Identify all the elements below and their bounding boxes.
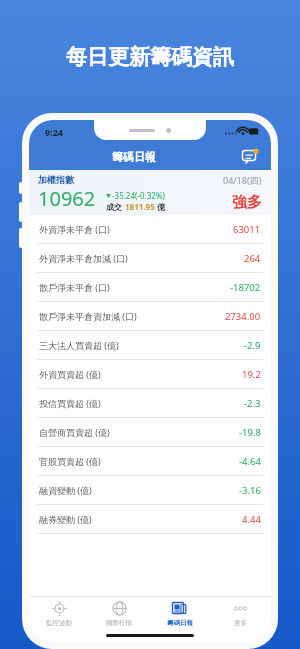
button[interactable]: 官股買賣超 (億) — [29, 447, 271, 476]
staticText: 外資淨未平倉加減 (口) — [39, 252, 128, 264]
button[interactable]: 外資買賣超 (億) — [29, 360, 271, 389]
button[interactable]: 三大法人買賣超 (億) — [29, 331, 271, 360]
button[interactable]: 融資變動 (億) — [29, 476, 271, 505]
staticText: -19.8 — [239, 426, 261, 439]
staticText: 自營商買賣超 (億) — [39, 426, 110, 438]
staticText: 9:24 — [45, 126, 63, 138]
staticText: 更多 — [234, 619, 247, 627]
staticText: -2.9 — [244, 339, 261, 352]
staticText: 散戶淨未平倉資加減 (口) — [39, 310, 137, 322]
staticText: 國際行情 — [106, 619, 132, 627]
button[interactable]: 散戶淨未平倉 (口) — [29, 273, 271, 302]
staticText: 億 — [155, 201, 166, 212]
button[interactable]: Messages — [239, 146, 261, 168]
button[interactable]: 監控波動 — [29, 601, 89, 627]
button[interactable]: 籌碼日報 — [149, 601, 210, 627]
staticText: 投信買賣超 (億) — [39, 397, 101, 409]
staticText: 1811.95 — [125, 201, 155, 212]
button[interactable]: 散戶淨未平倉資加減 (口) — [29, 302, 271, 331]
staticText: 每日更新籌碼資訊 — [66, 44, 234, 70]
staticText: 籌碼日報 — [112, 150, 156, 164]
button[interactable]: 融券變動 (億) — [29, 505, 271, 534]
staticText: 監控波動 — [46, 619, 72, 627]
staticText: -3.16 — [239, 484, 261, 497]
staticText: 10962 — [38, 185, 96, 212]
staticText: 外資買賣超 (億) — [39, 368, 101, 380]
staticText: -2.3 — [244, 397, 261, 410]
staticText: 成交 — [106, 201, 125, 212]
staticText: 強多 — [232, 193, 262, 212]
staticText: 264 — [244, 252, 261, 265]
staticText: -35.24(-0.32%) — [112, 190, 165, 201]
staticText: 04/18(四) — [223, 174, 262, 186]
staticText: 三大法人買賣超 (億) — [39, 339, 119, 351]
staticText: 加權指數 — [38, 174, 74, 185]
staticText: 籌碼日報 — [167, 619, 193, 627]
staticText: 官股買賣超 (億) — [39, 455, 101, 467]
staticText: 外資淨未平倉 (口) — [39, 223, 110, 235]
staticText: -4.64 — [239, 455, 261, 468]
button[interactable]: 投信買賣超 (億) — [29, 389, 271, 418]
button[interactable]: 更多 — [210, 601, 271, 627]
staticText: 63011 — [233, 223, 261, 236]
staticText: 融資變動 (億) — [39, 484, 92, 496]
button[interactable]: 外資淨未平倉 (口) — [29, 215, 271, 244]
button[interactable]: 外資淨未平倉加減 (口) — [29, 244, 271, 273]
staticText: 融券變動 (億) — [39, 513, 92, 525]
button[interactable]: 國際行情 — [89, 601, 149, 627]
staticText: 散戶淨未平倉 (口) — [39, 281, 110, 293]
button[interactable]: 自營商買賣超 (億) — [29, 418, 271, 447]
staticText: -18702 — [230, 281, 261, 294]
staticText: 4.44 — [242, 513, 261, 526]
staticText: 19.2 — [242, 368, 261, 381]
staticText: 2734.00 — [225, 310, 261, 323]
